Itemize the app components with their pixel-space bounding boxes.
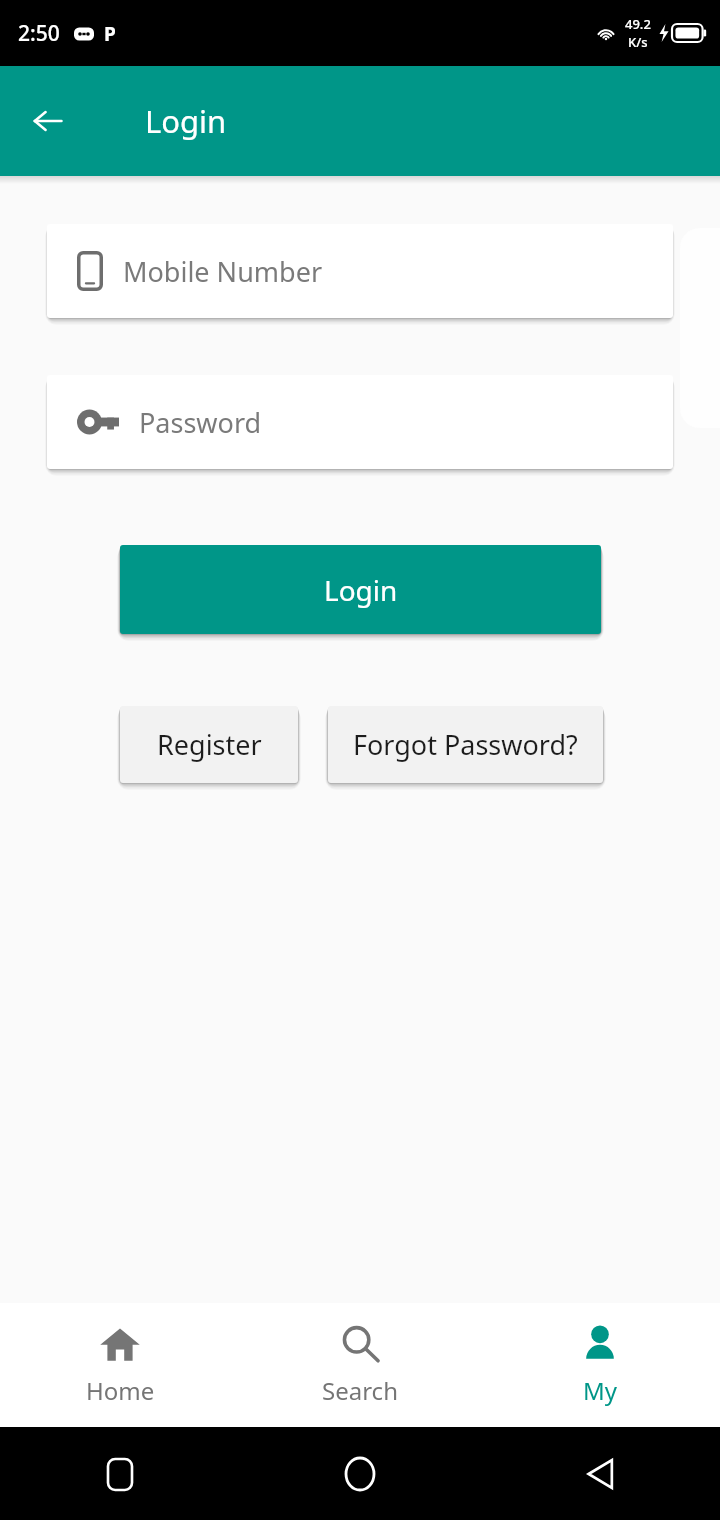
staticText: 2:50 <box>18 19 60 48</box>
button[interactable]: Mobile Number <box>47 224 673 318</box>
staticText: 49.2 <box>625 15 651 33</box>
button[interactable]: Home <box>0 1303 240 1427</box>
staticText: Register <box>157 726 262 763</box>
staticText: Login <box>324 571 398 609</box>
button[interactable]: Login <box>120 545 601 634</box>
button[interactable]: Recents <box>98 1452 142 1496</box>
staticText: Forgot Password? <box>353 726 578 763</box>
button[interactable]: Back <box>578 1452 622 1496</box>
button[interactable]: Home <box>338 1452 382 1496</box>
staticText: My <box>583 1374 618 1407</box>
staticText: K/s <box>628 33 648 51</box>
staticText: Home <box>86 1374 155 1407</box>
button[interactable]: Search <box>240 1303 480 1427</box>
staticText: P <box>104 21 116 47</box>
button[interactable]: My <box>480 1303 720 1427</box>
staticText: Search <box>322 1374 398 1407</box>
staticText: Password <box>139 404 262 441</box>
button[interactable]: Forgot Password? <box>328 706 603 783</box>
button[interactable]: Password <box>47 375 673 469</box>
staticText: Login <box>145 100 227 142</box>
button[interactable]: Back <box>22 95 74 147</box>
staticText: Mobile Number <box>123 253 323 290</box>
button[interactable]: Register <box>120 706 298 783</box>
